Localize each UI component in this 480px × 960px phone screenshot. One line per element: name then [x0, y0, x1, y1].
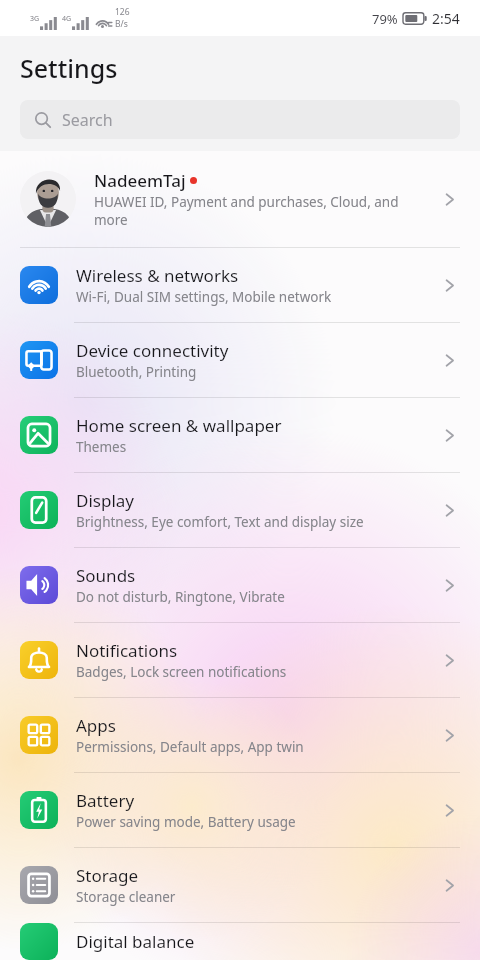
button[interactable]: NadeemTaj	[0, 151, 480, 248]
staticText: Bluetooth, Printing	[76, 363, 197, 381]
staticText: Battery	[76, 789, 135, 812]
staticText: Display	[76, 489, 134, 512]
button[interactable]: Digital balance icon	[20, 923, 460, 960]
staticText: Wireless & networks	[76, 264, 239, 287]
staticText: Digital balance	[76, 930, 460, 953]
staticText: 126	[115, 6, 130, 18]
staticText: Badges, Lock screen notifications	[76, 663, 287, 681]
staticText: Search	[62, 109, 113, 131]
staticText: Do not disturb, Ringtone, Vibrate	[76, 588, 285, 606]
button[interactable]: Search	[20, 100, 460, 139]
staticText: Apps	[76, 714, 116, 737]
button[interactable]: Battery	[0, 773, 480, 848]
staticText: 79%	[372, 10, 398, 28]
staticText: 4G	[62, 14, 72, 24]
staticText: Notifications	[76, 639, 178, 662]
staticText: HUAWEI ID, Payment and purchases, Cloud,…	[94, 193, 433, 229]
staticText: Sounds	[76, 564, 136, 587]
staticText: NadeemTaj	[94, 169, 186, 192]
staticText: Wi-Fi, Dual SIM settings, Mobile network	[76, 288, 332, 306]
staticText: Permissions, Default apps, App twin	[76, 738, 304, 756]
staticText: Settings	[20, 51, 118, 85]
staticText: Home screen & wallpaper	[76, 414, 282, 437]
staticText: Power saving mode, Battery usage	[76, 813, 296, 831]
button[interactable]: Wireless & networks	[0, 248, 480, 323]
staticText: Storage cleaner	[76, 888, 176, 906]
staticText: 3G	[30, 14, 40, 24]
button[interactable]: Notifications	[0, 623, 480, 698]
staticText: B/s	[115, 18, 128, 30]
staticText: Brightness, Eye comfort, Text and displa…	[76, 513, 364, 531]
staticText: Themes	[76, 438, 127, 456]
staticText: Storage	[76, 864, 139, 887]
other: Digital balance icon	[20, 923, 58, 960]
button[interactable]: Display	[0, 473, 480, 548]
button[interactable]: Storage	[0, 848, 480, 923]
staticText: 2:54	[432, 9, 460, 28]
button[interactable]: Apps	[0, 698, 480, 773]
staticText: Device connectivity	[76, 339, 229, 362]
button[interactable]: Home screen & wallpaper	[0, 398, 480, 473]
button[interactable]: Sounds	[0, 548, 480, 623]
button[interactable]: Device connectivity	[0, 323, 480, 398]
